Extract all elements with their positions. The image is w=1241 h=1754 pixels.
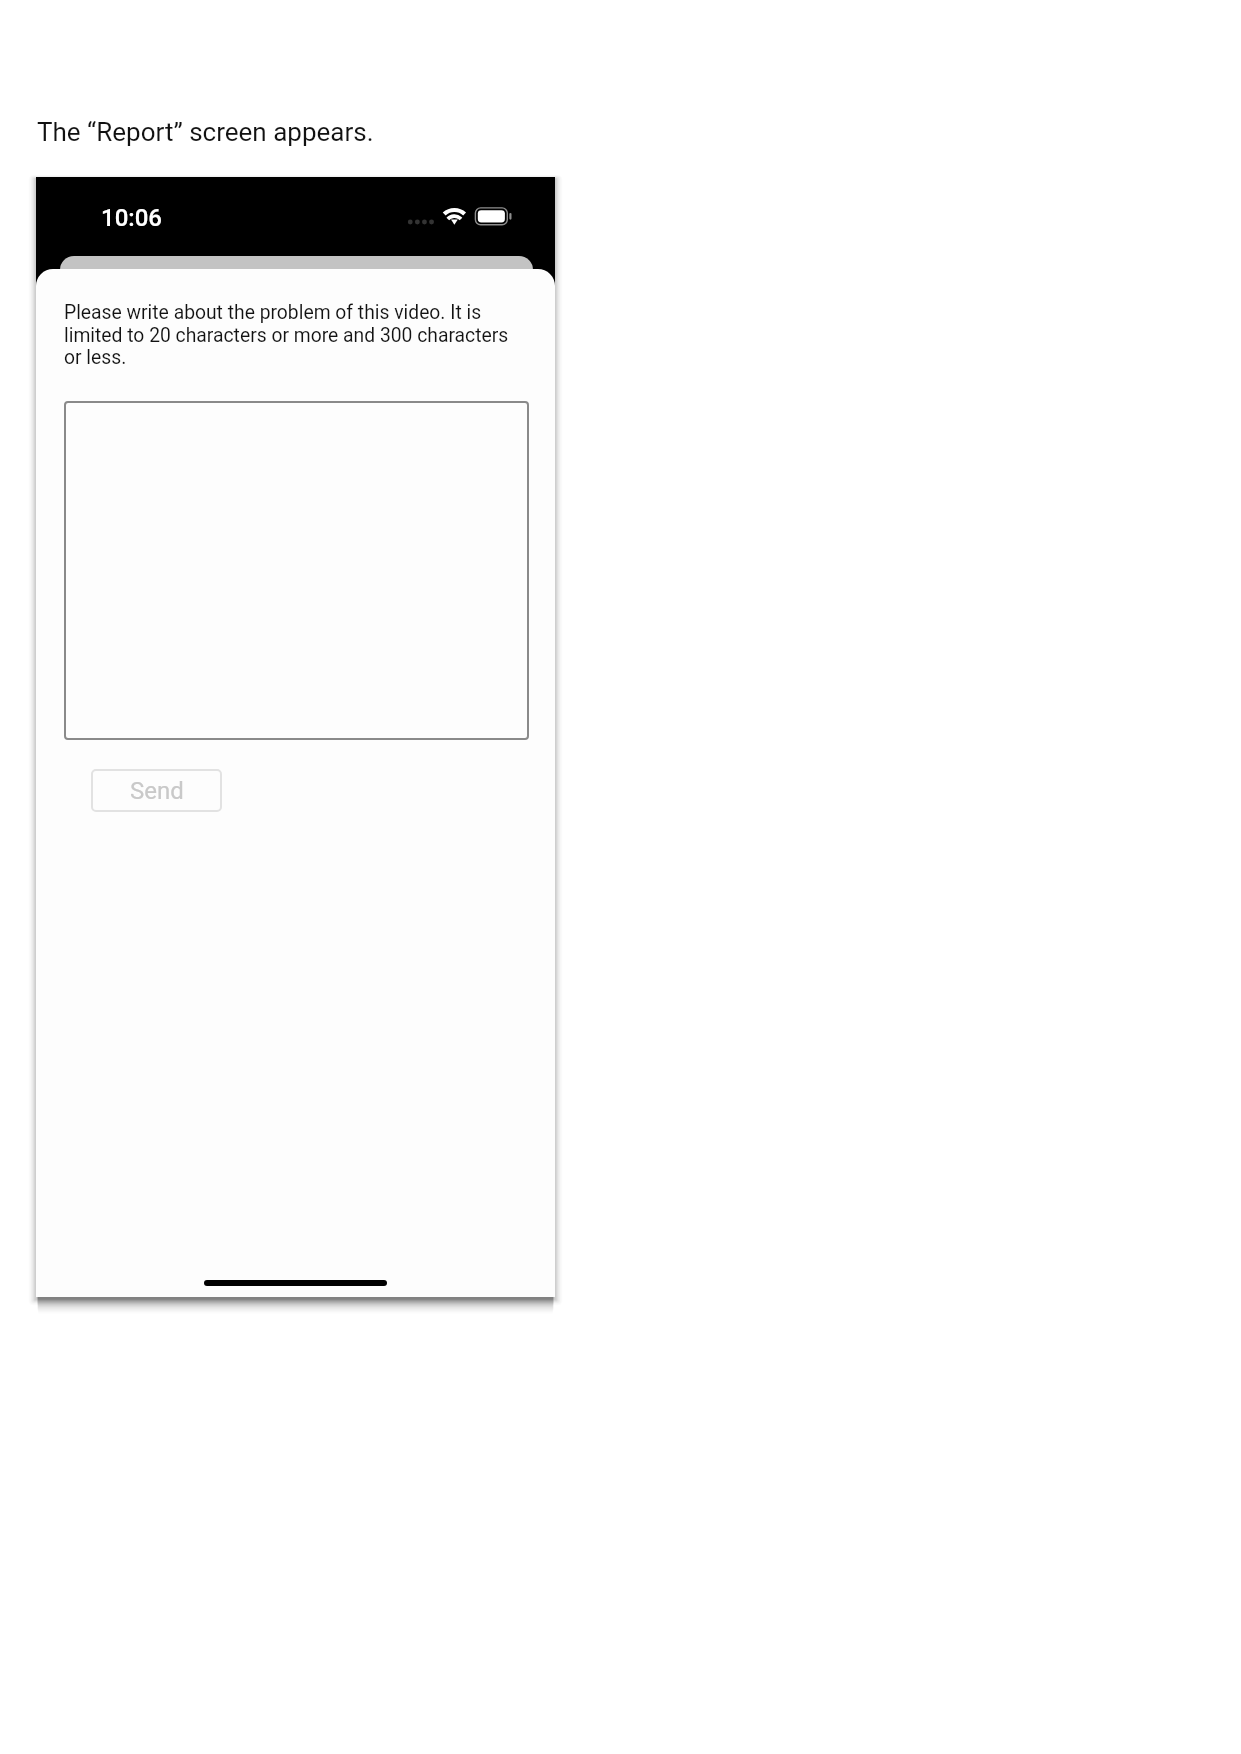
- staticText: Send: [130, 777, 184, 805]
- staticText: The “Report” screen appears.: [37, 117, 374, 147]
- button[interactable]: Report description text field: [64, 401, 529, 740]
- staticText: Please write about the problem of this v…: [64, 301, 519, 368]
- staticText: 10:06: [101, 204, 162, 232]
- button[interactable]: Send: [91, 769, 222, 812]
